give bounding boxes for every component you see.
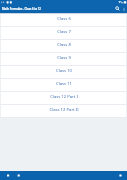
button[interactable]: Class 8 [1, 40, 126, 52]
staticText: Class 6 [57, 16, 71, 22]
button[interactable]: Home [12, 171, 23, 180]
button[interactable]: Class 11 [1, 79, 126, 91]
staticText: Class 8 [57, 42, 71, 48]
button[interactable]: Class 7 [1, 27, 126, 39]
staticText: Class 11 [56, 81, 72, 87]
staticText: Class 7 [57, 29, 71, 35]
button[interactable]: Class 12 Part II [1, 105, 126, 117]
button[interactable]: Recent apps [115, 171, 127, 180]
button[interactable]: Class 12 Part I [1, 92, 126, 104]
staticText: Class 12 Part I [50, 94, 78, 100]
staticText: Class 9 [57, 55, 71, 61]
staticText: Class 10 [56, 68, 72, 74]
button[interactable]: Class 6 [1, 14, 126, 26]
staticText: Math Formulas - Class 6 to 12 [2, 7, 41, 11]
button[interactable]: Class 10 [1, 66, 126, 78]
staticText: Class 12 Part II [49, 107, 79, 113]
button[interactable]: Search [114, 5, 121, 12]
button[interactable]: Back [0, 171, 12, 180]
button[interactable]: More options [121, 6, 126, 11]
button[interactable]: Class 9 [1, 53, 126, 65]
